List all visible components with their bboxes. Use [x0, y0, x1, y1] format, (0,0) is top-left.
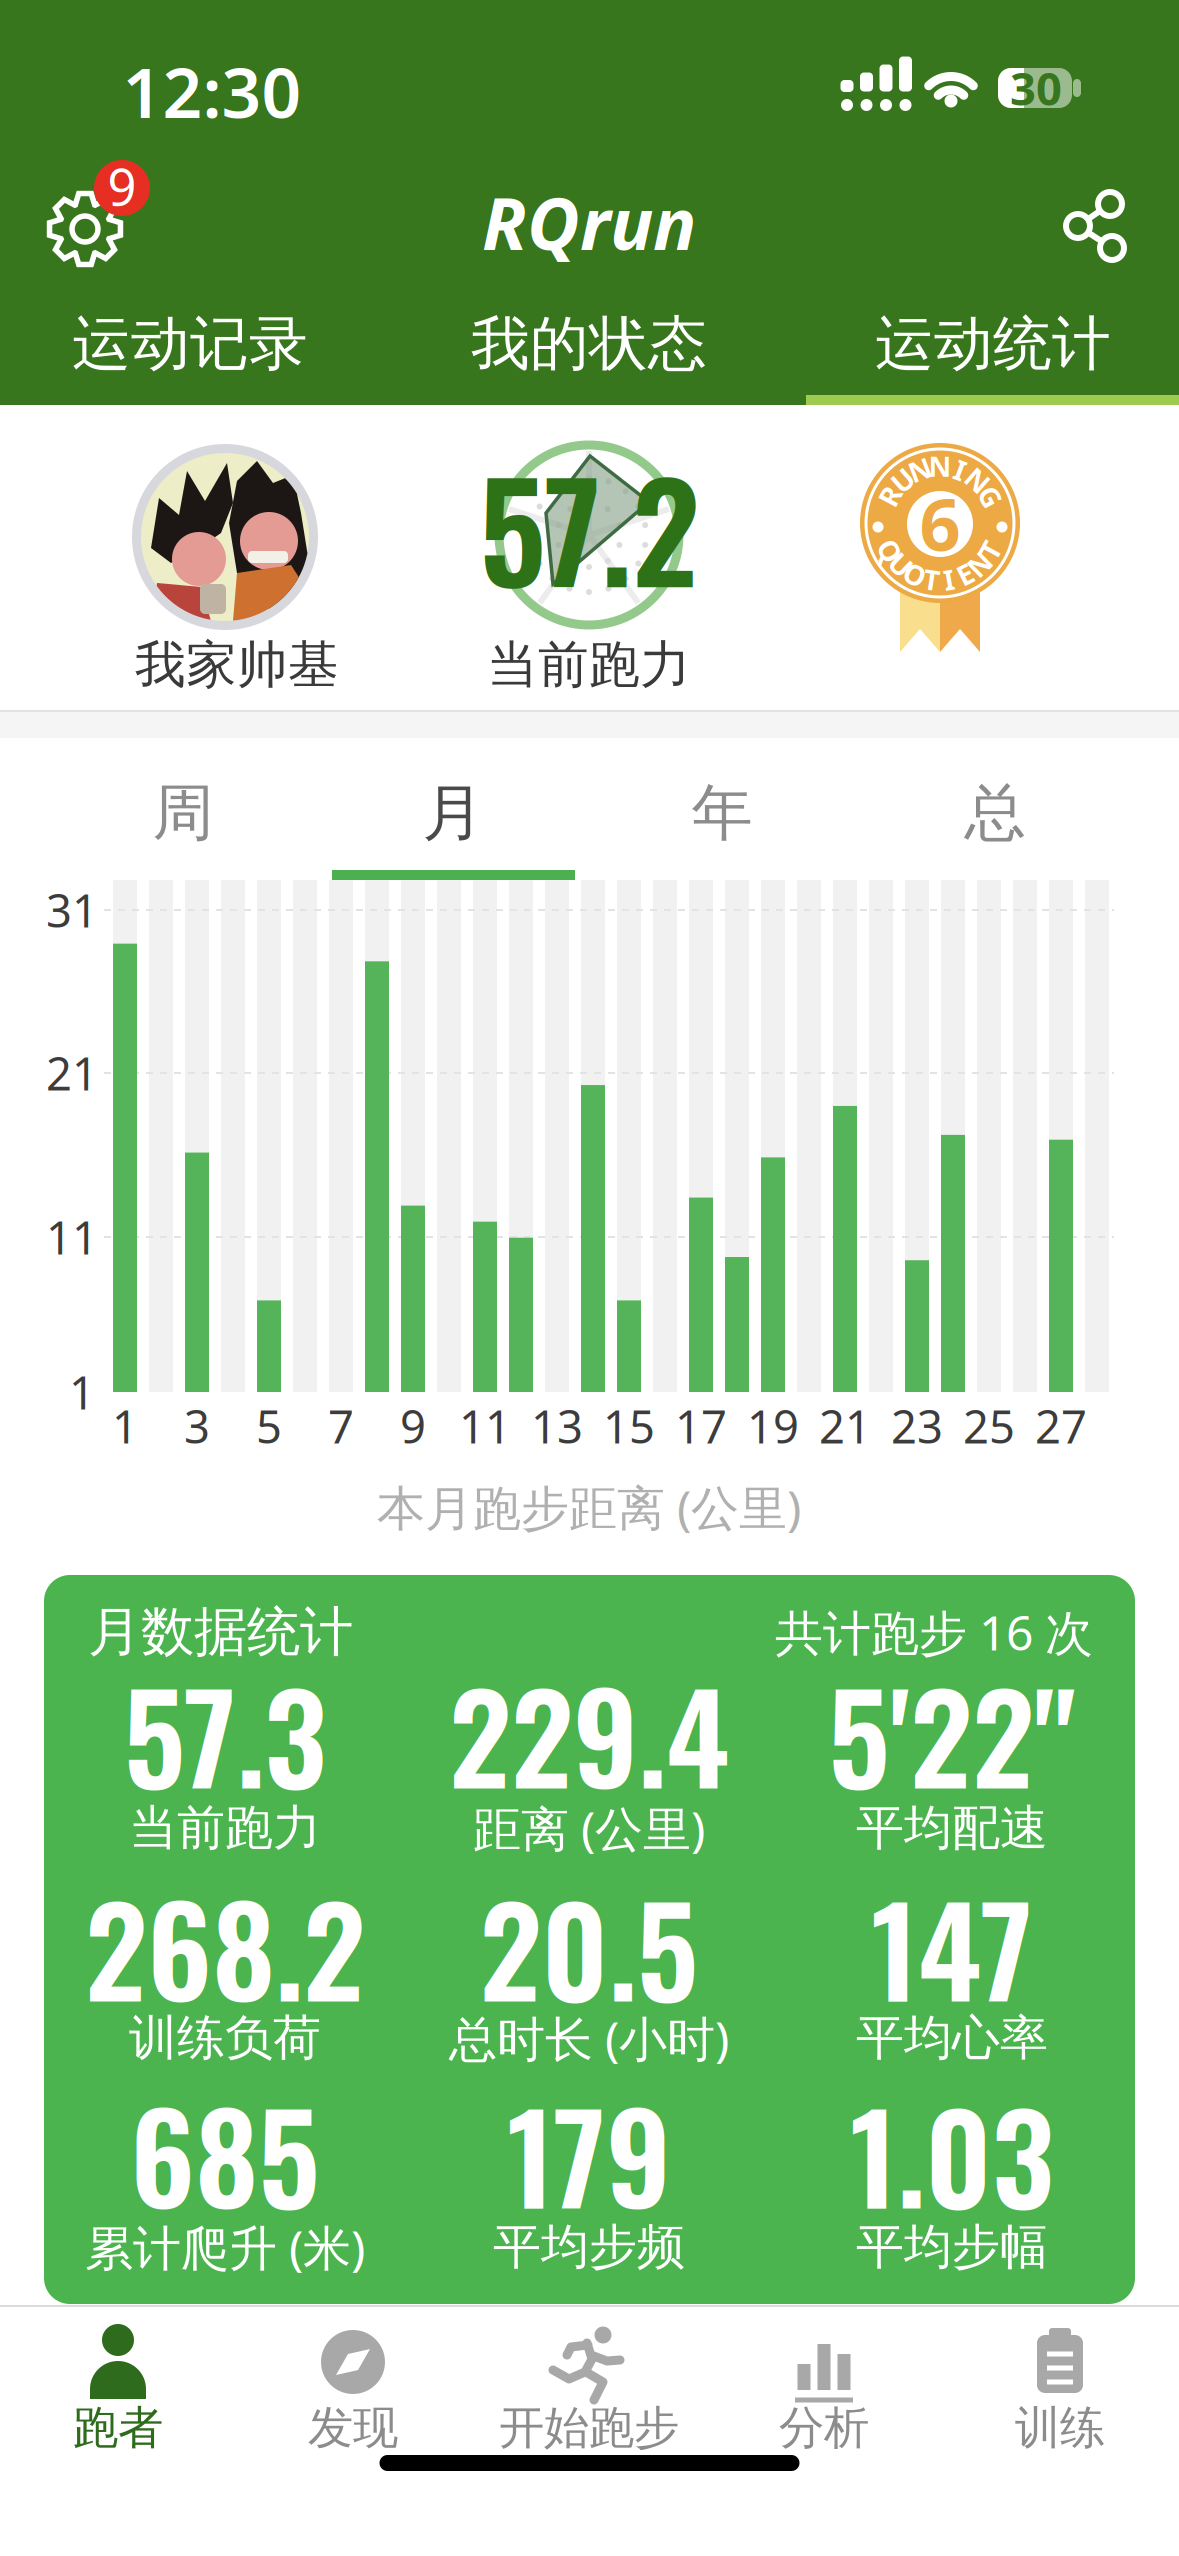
staticText: T: [924, 561, 940, 598]
button[interactable]: [1030, 170, 1160, 282]
staticText: 月: [422, 775, 483, 851]
staticText: 总时长 (小时): [449, 2006, 729, 2070]
staticText: 本月跑步距离 (公里): [377, 1475, 801, 1539]
staticText: N: [929, 447, 952, 485]
staticText: O: [904, 556, 926, 593]
staticText: 15: [603, 1396, 655, 1456]
staticText: 179: [507, 2062, 671, 2244]
button[interactable]: 运动统计: [875, 308, 1111, 380]
staticText: 21: [46, 1043, 98, 1103]
staticText: 147: [871, 1855, 1033, 2037]
staticText: 17: [675, 1396, 727, 1456]
button[interactable]: 总: [964, 775, 1025, 851]
button[interactable]: 9: [22, 150, 162, 290]
staticText: 平均心率: [856, 2008, 1048, 2067]
staticText: 12:30: [122, 45, 301, 137]
button[interactable]: 周: [152, 775, 213, 851]
staticText: 5: [256, 1396, 282, 1456]
button[interactable]: 年: [691, 775, 752, 851]
staticText: 平均步幅: [856, 2217, 1048, 2276]
staticText: 3: [184, 1396, 210, 1456]
staticText: N: [966, 462, 989, 499]
staticText: T: [982, 532, 998, 569]
button[interactable]: 跑者: [28, 2314, 208, 2446]
staticText: 268.2: [85, 1855, 365, 2037]
staticText: 运动统计: [875, 308, 1111, 380]
staticText: 训练: [1015, 2400, 1105, 2456]
staticText: 周: [152, 775, 213, 851]
staticText: 距离 (公里): [473, 1796, 705, 1860]
staticText: 发现: [308, 2400, 398, 2456]
staticText: 我家帅基: [135, 634, 339, 696]
staticText: 月数据统计: [88, 1599, 353, 1665]
staticText: 跑者: [73, 2400, 163, 2456]
staticText: 共计跑步 16 次: [775, 1600, 1093, 1664]
staticText: 13: [531, 1396, 583, 1456]
staticText: I: [943, 561, 954, 598]
staticText: 当前跑力: [487, 634, 691, 696]
staticText: 训练负荷: [129, 2008, 321, 2067]
button[interactable]: 运动记录: [72, 308, 308, 380]
staticText: N: [908, 451, 931, 488]
button[interactable]: 开始跑步: [499, 2314, 679, 2446]
staticText: E: [957, 555, 973, 593]
staticText: G: [980, 478, 1000, 515]
staticText: 开始跑步: [499, 2400, 679, 2456]
staticText: 11: [46, 1207, 98, 1267]
staticText: 6: [919, 475, 960, 571]
staticText: U: [890, 546, 911, 583]
staticText: N: [968, 545, 991, 583]
staticText: 1: [69, 1362, 95, 1422]
staticText: 57.3: [123, 1642, 326, 1824]
staticText: 7: [328, 1396, 354, 1456]
staticText: 平均配速: [856, 1798, 1048, 1857]
staticText: 运动记录: [72, 308, 308, 380]
staticText: 分析: [779, 2400, 869, 2456]
button[interactable]: 分析: [734, 2314, 914, 2446]
staticText: 57.2: [479, 428, 699, 626]
staticText: 11: [459, 1396, 511, 1456]
staticText: 20.5: [479, 1855, 698, 2037]
staticText: RQrun: [482, 174, 696, 270]
staticText: R: [881, 478, 899, 515]
staticText: 我的状态: [471, 308, 707, 380]
staticText: 累计爬升 (米): [85, 2215, 365, 2279]
button[interactable]: 发现: [263, 2314, 443, 2446]
staticText: 1.03: [850, 2062, 1054, 2244]
staticText: 9: [107, 152, 136, 220]
staticText: 30: [1010, 58, 1062, 118]
staticText: 21: [819, 1396, 871, 1456]
staticText: 23: [891, 1396, 943, 1456]
staticText: 25: [963, 1396, 1015, 1456]
staticText: 31: [46, 880, 98, 940]
button[interactable]: 我的状态: [471, 308, 707, 380]
staticText: 当前跑力: [129, 1798, 321, 1857]
staticText: 9: [400, 1396, 426, 1456]
staticText: 平均步频: [493, 2217, 685, 2276]
staticText: 19: [747, 1396, 799, 1456]
button[interactable]: 月: [422, 775, 483, 851]
staticText: 1: [112, 1396, 138, 1456]
staticText: 229.4: [449, 1642, 729, 1824]
staticText: 685: [130, 2062, 320, 2244]
button[interactable]: 训练: [970, 2314, 1150, 2446]
staticText: 总: [964, 775, 1025, 851]
staticText: I: [955, 451, 966, 488]
staticText: 5'22": [828, 1642, 1076, 1824]
staticText: 年: [691, 775, 752, 851]
staticText: U: [892, 462, 913, 499]
staticText: 27: [1035, 1396, 1087, 1456]
staticText: Q: [879, 532, 901, 569]
